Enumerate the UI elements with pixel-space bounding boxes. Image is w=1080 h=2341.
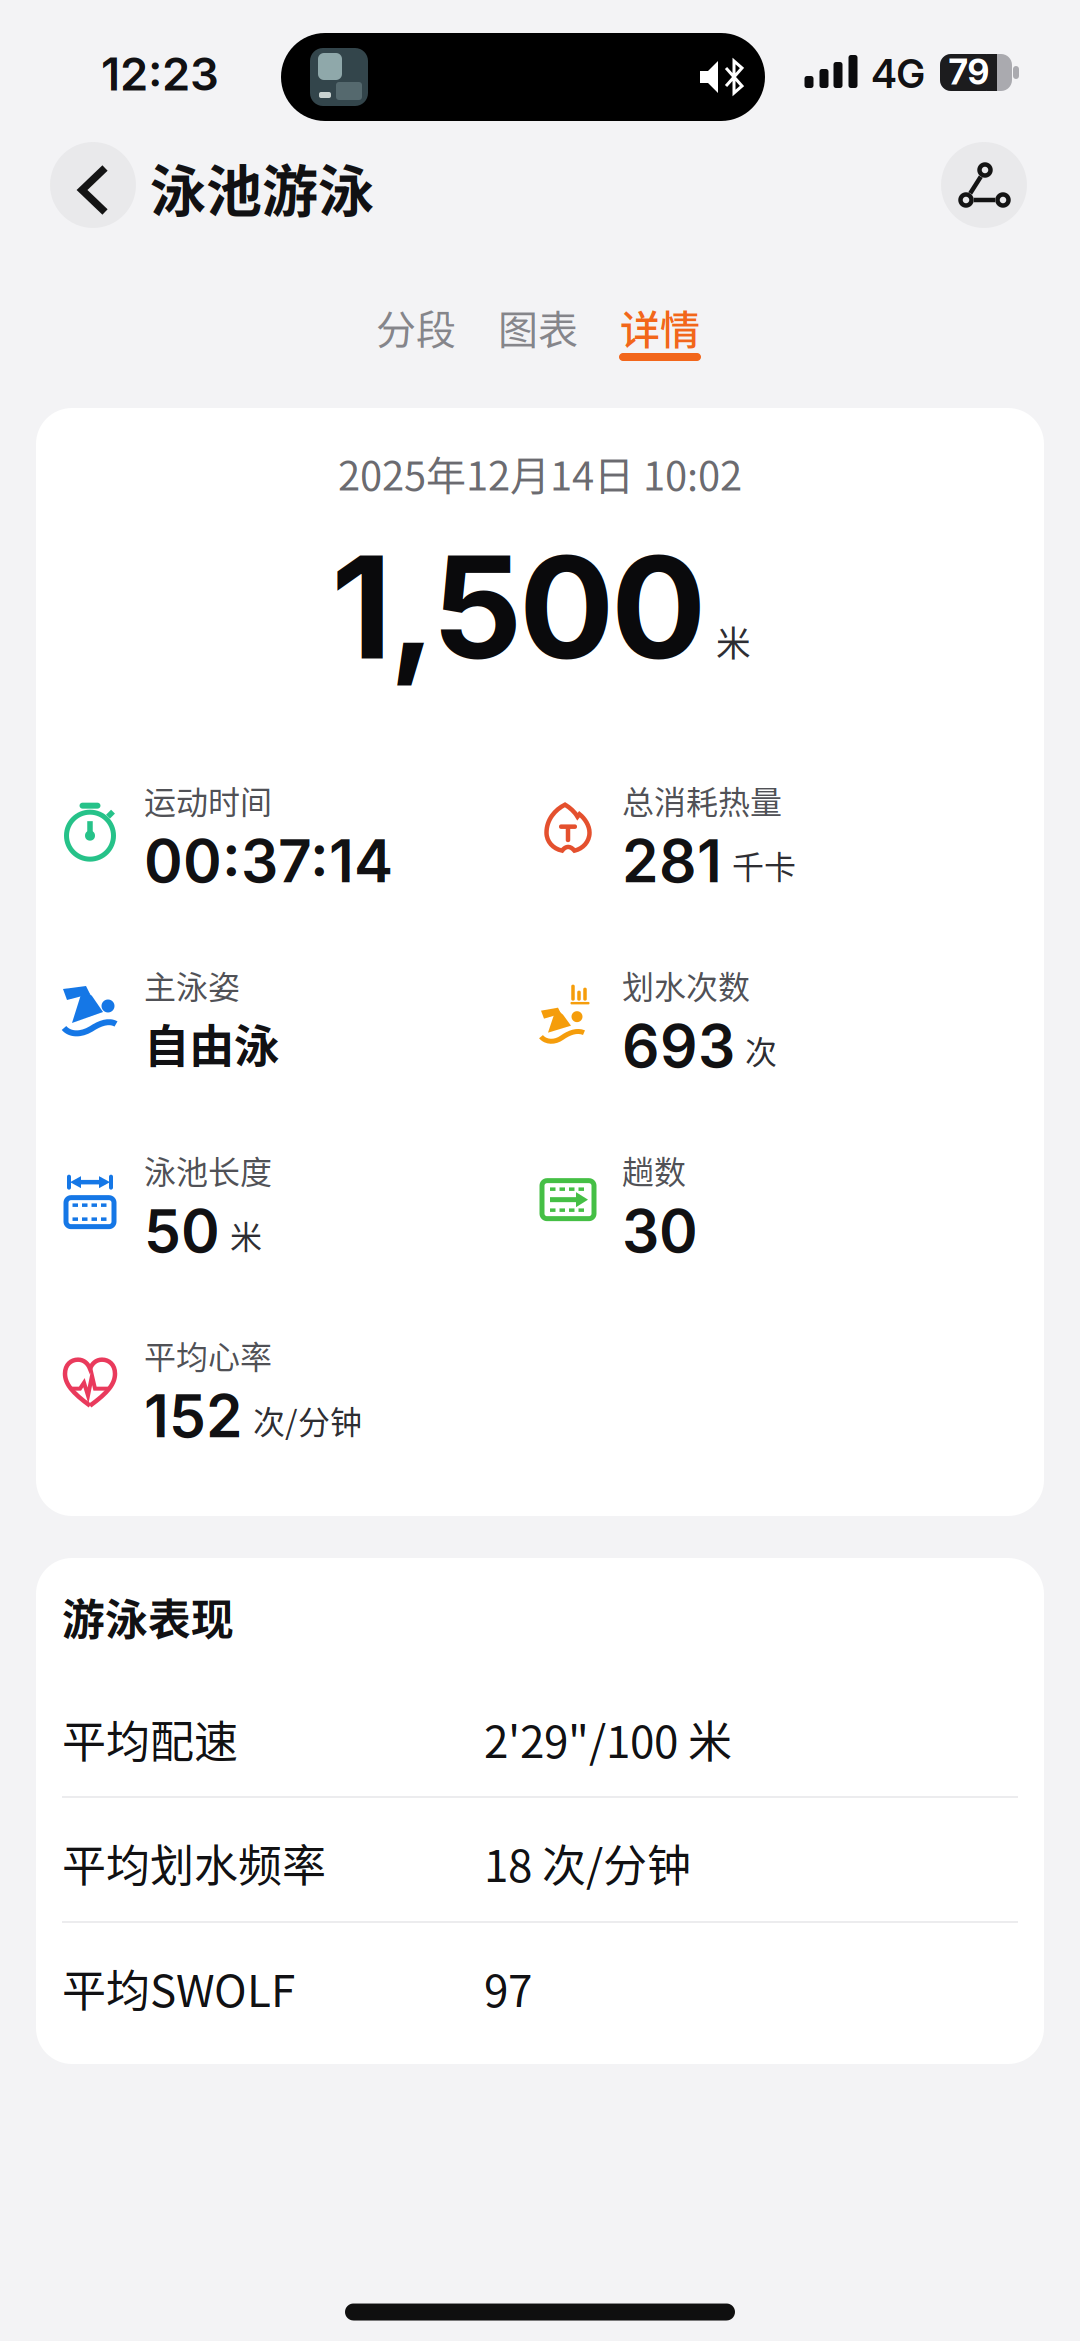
- staticText: 趟数: [622, 1147, 686, 1193]
- staticText: 79: [948, 51, 989, 93]
- staticText: 50: [144, 1195, 220, 1266]
- staticText: 米: [716, 616, 751, 666]
- staticText: 693: [622, 1010, 735, 1081]
- staticText: 总消耗热量: [622, 777, 782, 823]
- staticText: 米: [230, 1212, 262, 1258]
- staticText: 281: [622, 825, 722, 896]
- staticText: 30: [622, 1195, 698, 1266]
- staticText: 平均心率: [144, 1332, 272, 1378]
- staticText: 泳池长度: [144, 1147, 272, 1193]
- staticText: 详情: [620, 298, 700, 356]
- staticText: 运动时间: [144, 777, 272, 823]
- staticText: 划水次数: [622, 962, 750, 1008]
- staticText: 自由泳: [144, 1010, 279, 1076]
- button[interactable]: Share: [941, 142, 1027, 228]
- staticText: 18 次/分钟: [484, 1831, 691, 1895]
- staticText: 97: [484, 1956, 532, 2020]
- staticText: 图表: [498, 298, 578, 356]
- staticText: 分段: [376, 298, 456, 356]
- staticText: 千卡: [732, 842, 796, 888]
- staticText: 4G: [871, 51, 924, 97]
- staticText: 2025年12月14日 10:02: [338, 444, 742, 502]
- staticText: 游泳表现: [62, 1586, 234, 1648]
- button[interactable]: Back: [50, 142, 136, 228]
- button[interactable]: 图表: [498, 298, 578, 356]
- staticText: 152: [144, 1380, 243, 1451]
- staticText: 平均划水频率: [62, 1831, 326, 1895]
- staticText: 次: [745, 1027, 777, 1073]
- button[interactable]: 详情: [620, 298, 700, 356]
- staticText: 泳池游泳: [150, 146, 374, 228]
- staticText: 00:37:14: [144, 825, 393, 896]
- button[interactable]: 分段: [376, 298, 456, 356]
- staticText: 12:23: [101, 47, 219, 101]
- staticText: 主泳姿: [144, 962, 240, 1008]
- staticText: 1,500: [331, 521, 706, 692]
- staticText: 2'29"/100 米: [484, 1707, 732, 1771]
- staticText: 平均SWOLF: [62, 1956, 295, 2020]
- staticText: 次/分钟: [253, 1397, 362, 1443]
- staticText: 平均配速: [62, 1707, 238, 1771]
